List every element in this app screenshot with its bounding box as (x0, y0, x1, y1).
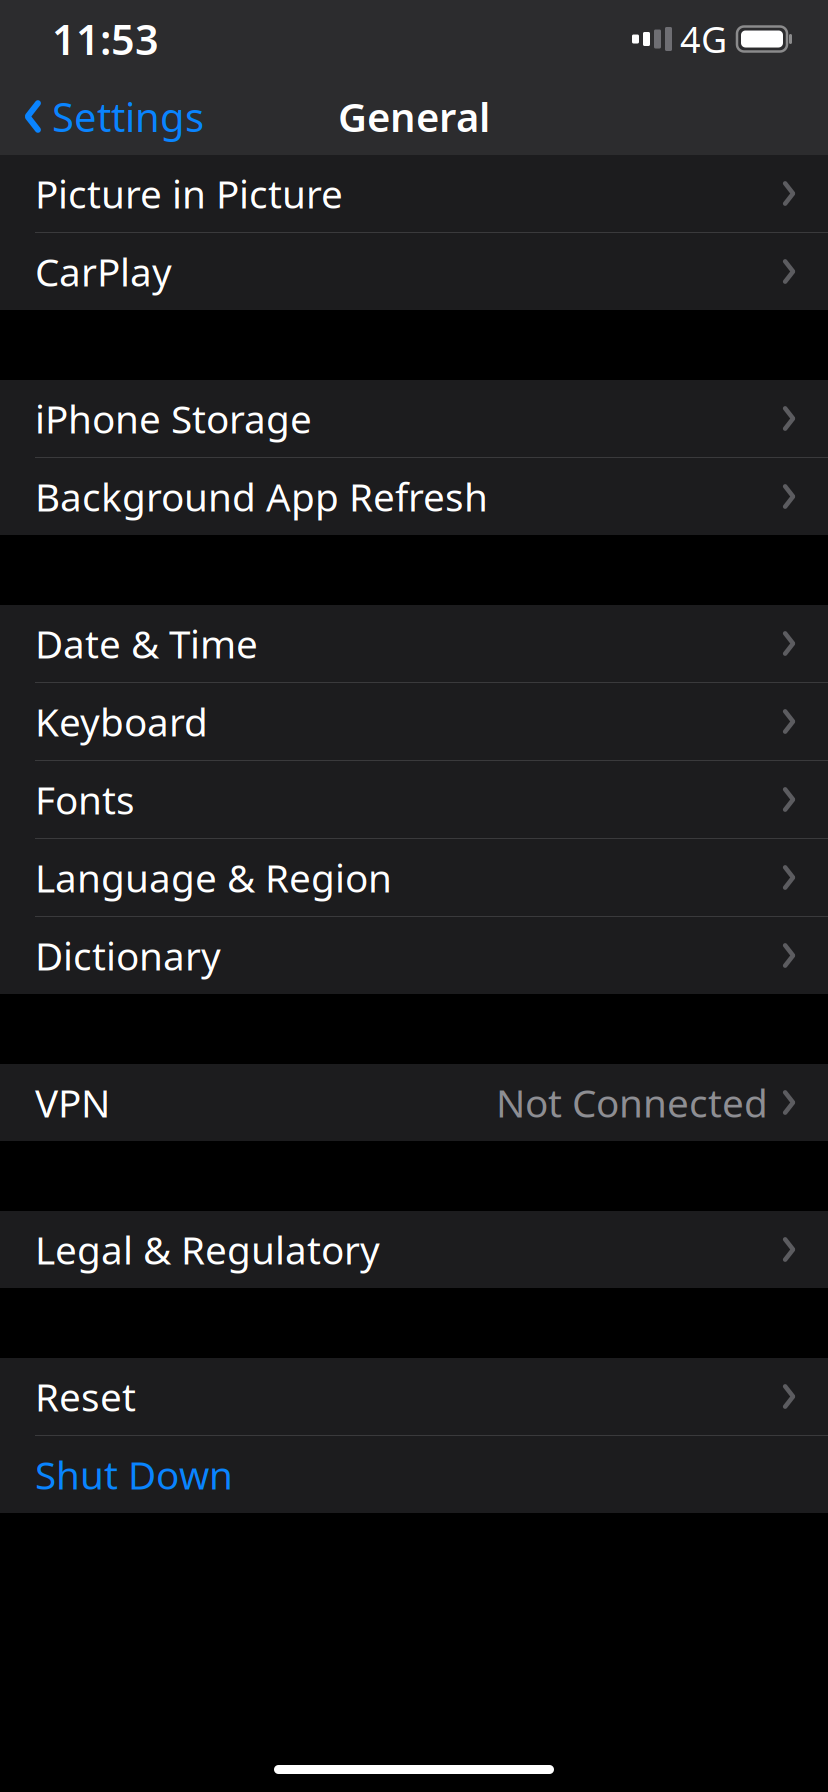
staticText: General (338, 90, 490, 143)
button[interactable]: Background App Refresh (0, 458, 828, 535)
staticText: 11:53 (52, 12, 159, 66)
button[interactable]: VPN (0, 1064, 828, 1141)
staticText: CarPlay (35, 246, 172, 297)
staticText: Picture in Picture (35, 168, 343, 219)
button[interactable]: Reset (0, 1358, 828, 1435)
staticText: Not Connected (496, 1077, 768, 1128)
staticText: Background App Refresh (35, 471, 488, 522)
button[interactable]: Dictionary (0, 917, 828, 994)
button[interactable]: CarPlay (0, 233, 828, 310)
staticText: VPN (35, 1077, 110, 1128)
staticText: Date & Time (35, 618, 258, 669)
staticText: Settings (52, 90, 204, 143)
button[interactable]: Legal & Regulatory (0, 1211, 828, 1288)
staticText: Shut Down (35, 1449, 233, 1500)
staticText: 4G (680, 15, 727, 63)
button[interactable]: iPhone Storage (0, 380, 828, 457)
button[interactable]: Picture in Picture (0, 155, 828, 232)
button[interactable]: Settings (0, 82, 204, 151)
button[interactable]: Fonts (0, 761, 828, 838)
button[interactable]: Date & Time (0, 605, 828, 682)
button[interactable]: Language & Region (0, 839, 828, 916)
button[interactable]: Keyboard (0, 683, 828, 760)
staticText: Fonts (35, 774, 135, 825)
staticText: Keyboard (35, 696, 208, 747)
staticText: Legal & Regulatory (35, 1224, 380, 1275)
button[interactable]: Shut Down (0, 1436, 828, 1513)
staticText: iPhone Storage (35, 393, 312, 444)
staticText: Dictionary (35, 930, 221, 981)
staticText: Reset (35, 1371, 136, 1422)
staticText: Language & Region (35, 852, 392, 903)
